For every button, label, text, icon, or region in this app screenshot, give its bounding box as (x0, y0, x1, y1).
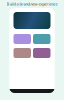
button[interactable] (33, 48, 50, 58)
staticText: Build a brand-new experience (6, 1, 57, 7)
button[interactable] (13, 48, 31, 58)
button[interactable] (13, 34, 31, 44)
button[interactable] (33, 34, 50, 44)
